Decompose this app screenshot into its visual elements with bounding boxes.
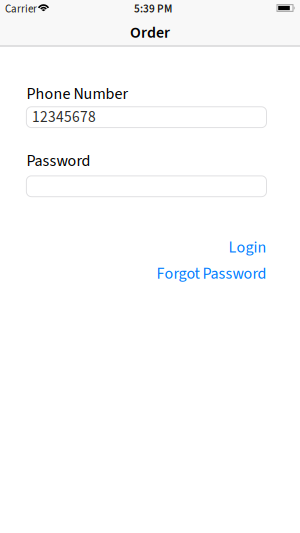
button[interactable]: Forgot Password [156, 262, 266, 285]
staticText: Password [26, 150, 90, 172]
staticText: Forgot Password [156, 262, 266, 285]
staticText: Login [228, 236, 266, 259]
button[interactable]: Login [228, 236, 266, 259]
staticText: Order [130, 21, 170, 44]
staticText: Phone Number [26, 82, 128, 105]
staticText: 5:39 PM [134, 1, 172, 17]
secureTextField[interactable] [32, 175, 261, 197]
textField[interactable]: 12345678 [32, 106, 261, 128]
staticText: 12345678 [32, 106, 96, 128]
staticText: Carrier [5, 1, 37, 17]
